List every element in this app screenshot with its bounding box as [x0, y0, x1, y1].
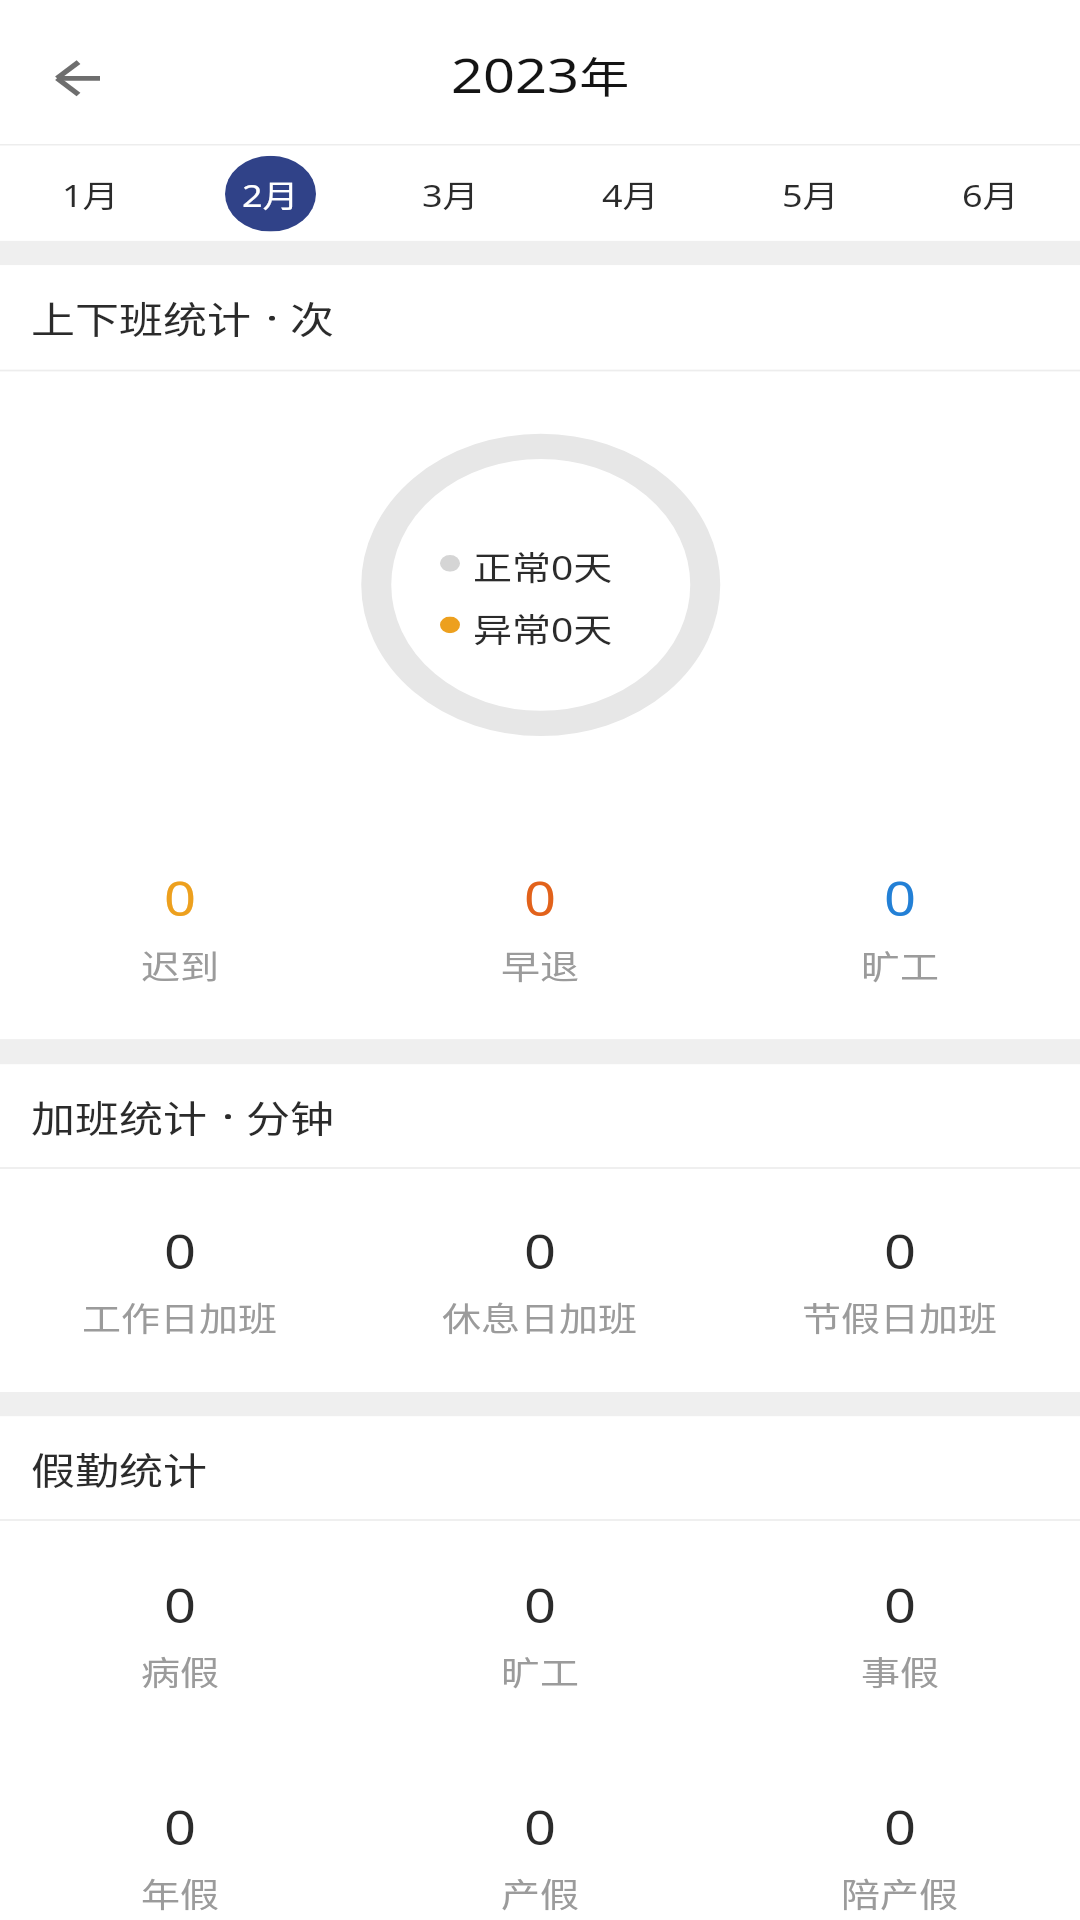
button[interactable]: Back — [27, 38, 127, 119]
button[interactable]: 3月 — [360, 146, 540, 241]
button[interactable]: 0 — [360, 800, 720, 1039]
button[interactable]: 0 — [360, 1169, 720, 1392]
staticText: 0 — [524, 1218, 557, 1282]
staticText: 0 — [164, 1794, 197, 1858]
staticText: 5月 — [782, 172, 839, 216]
staticText: 节假日加班 — [802, 1293, 998, 1341]
staticText: 加班统计 — [31, 1090, 207, 1144]
button[interactable]: 0 — [0, 1169, 360, 1392]
button[interactable]: 0 — [360, 1521, 720, 1743]
staticText: 0 — [164, 866, 197, 930]
button[interactable]: 0 — [0, 1743, 360, 1920]
staticText: 0 — [884, 1572, 917, 1636]
staticText: 事假 — [861, 1647, 940, 1694]
staticText: 0 — [884, 1218, 917, 1282]
staticText: 年假 — [141, 1869, 220, 1917]
staticText: 病假 — [141, 1647, 220, 1694]
staticText: 异常0天 — [473, 604, 613, 652]
button[interactable]: 6月 — [900, 146, 1080, 241]
staticText: 6月 — [962, 172, 1019, 216]
staticText: 0 — [164, 1218, 197, 1282]
staticText: 假勤统计 — [31, 1442, 207, 1496]
staticText: 0 — [164, 1572, 197, 1636]
staticText: 旷工 — [861, 941, 940, 988]
staticText: 0 — [884, 1794, 917, 1858]
staticText: 正常0天 — [473, 542, 613, 590]
staticText: 0 — [524, 1794, 557, 1858]
staticText: 4月 — [602, 172, 659, 216]
staticText: 休息日加班 — [442, 1293, 638, 1341]
button[interactable]: 5月 — [720, 146, 900, 241]
button[interactable]: 0 — [0, 1521, 360, 1743]
staticText: 2023年 — [451, 42, 630, 106]
button[interactable]: 0 — [720, 1169, 1080, 1392]
button[interactable]: 4月 — [540, 146, 720, 241]
staticText: 2月 — [242, 172, 299, 216]
button[interactable]: 0 — [720, 1521, 1080, 1743]
staticText: 0 — [524, 866, 557, 930]
staticText: 上下班统计 — [31, 291, 251, 345]
button[interactable]: 0 — [360, 1743, 720, 1920]
staticText: 3月 — [422, 172, 479, 216]
staticText: 次 — [290, 291, 334, 345]
staticText: 分钟 — [246, 1090, 334, 1144]
staticText: 迟到 — [141, 941, 220, 988]
button[interactable]: 0 — [720, 800, 1080, 1039]
button[interactable]: 2月 — [180, 146, 360, 241]
staticText: 0 — [524, 1572, 557, 1636]
button[interactable]: 0 — [720, 1743, 1080, 1920]
staticText: 1月 — [62, 172, 119, 216]
button[interactable]: 0 — [0, 800, 360, 1039]
button[interactable]: 1月 — [0, 146, 180, 241]
staticText: 0 — [884, 866, 917, 930]
staticText: 陪产假 — [841, 1869, 959, 1917]
staticText: 工作日加班 — [82, 1293, 278, 1341]
staticText: 旷工 — [501, 1647, 580, 1694]
staticText: 产假 — [501, 1869, 580, 1917]
staticText: 早退 — [501, 941, 580, 988]
